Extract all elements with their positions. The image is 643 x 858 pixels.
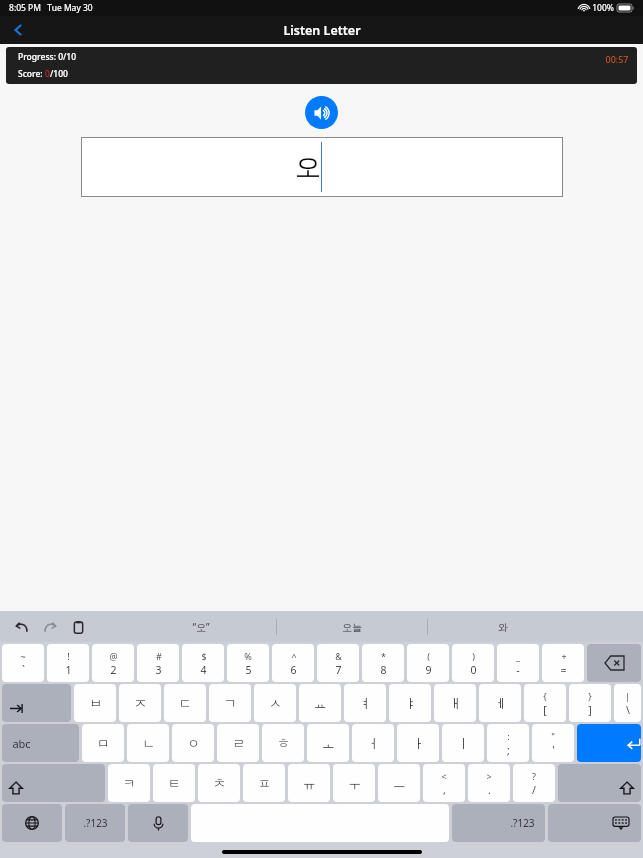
button[interactable]: ㅗ [307, 724, 349, 762]
button[interactable]: ㄹ [217, 724, 259, 762]
button[interactable]: : [487, 724, 529, 762]
button[interactable]: % [227, 644, 269, 682]
staticText: 2 [110, 663, 117, 677]
button[interactable]: ㅠ [288, 764, 330, 802]
staticText: | [625, 690, 630, 702]
button[interactable]: ~ [2, 644, 44, 682]
staticText: 와 [498, 621, 508, 634]
staticText: ㅁ [97, 735, 110, 751]
button[interactable]: Shift [2, 764, 105, 802]
staticText: : [507, 730, 510, 742]
button[interactable]: + [542, 644, 584, 682]
staticText: 5 [245, 663, 252, 677]
button[interactable]: ㅜ [333, 764, 375, 802]
button[interactable]: Back [4, 16, 32, 44]
staticText: ㅈ [134, 695, 147, 711]
button[interactable]: Backspace [587, 644, 641, 682]
staticText: ~ [20, 650, 26, 662]
button[interactable]: ㄷ [164, 684, 206, 722]
staticText: > [486, 770, 492, 782]
button[interactable]: 와 [428, 614, 578, 640]
button[interactable]: ㅂ [74, 684, 116, 722]
button[interactable]: .?123 [452, 804, 545, 842]
button[interactable]: ㅓ [352, 724, 394, 762]
staticText: ( [427, 650, 430, 662]
button[interactable]: Shift [558, 764, 641, 802]
button[interactable]: abc [2, 724, 79, 762]
button[interactable]: * [362, 644, 404, 682]
button[interactable]: ㅣ [442, 724, 484, 762]
staticText: “오” [192, 620, 210, 634]
staticText: ㄷ [179, 695, 192, 711]
button[interactable]: Play sound [305, 96, 338, 129]
button[interactable]: Change language [2, 804, 62, 842]
button[interactable]: 오 [81, 137, 563, 197]
button[interactable]: Progress: 0/10 [6, 47, 637, 84]
button[interactable]: { [524, 684, 566, 722]
staticText: .?123 [83, 816, 108, 830]
button[interactable]: Dictation [128, 804, 188, 842]
button[interactable]: 오늘 [277, 614, 427, 640]
staticText: ㅠ [303, 775, 316, 791]
staticText: 8 [380, 663, 387, 677]
staticText: ㅔ [494, 695, 507, 711]
button[interactable]: > [468, 764, 510, 802]
button[interactable]: ㅛ [299, 684, 341, 722]
button[interactable]: Tab [2, 684, 71, 722]
staticText: .?123 [510, 816, 535, 830]
staticText: ! [67, 650, 70, 662]
staticText: @ [109, 650, 118, 662]
button[interactable]: “오” [126, 614, 276, 640]
button[interactable]: $ [182, 644, 224, 682]
staticText: \ [626, 703, 630, 717]
button[interactable]: } [569, 684, 611, 722]
staticText: / [532, 783, 536, 797]
button[interactable]: ! [47, 644, 89, 682]
staticText: & [335, 650, 342, 662]
button[interactable]: ㅎ [262, 724, 304, 762]
button[interactable]: # [137, 644, 179, 682]
staticText: ㅇ [187, 735, 200, 751]
button[interactable]: ? [513, 764, 555, 802]
button[interactable]: ㄴ [127, 724, 169, 762]
button[interactable]: ㅏ [397, 724, 439, 762]
button[interactable]: _ [497, 644, 539, 682]
button[interactable]: & [317, 644, 359, 682]
button[interactable]: ㅑ [389, 684, 431, 722]
button[interactable]: Undo [10, 615, 34, 639]
button[interactable]: ㅁ [82, 724, 124, 762]
button[interactable]: ㅐ [434, 684, 476, 722]
staticText: Listen Letter [283, 22, 361, 39]
button[interactable]: ㅍ [243, 764, 285, 802]
staticText: 오늘 [342, 621, 362, 634]
button[interactable]: .?123 [65, 804, 125, 842]
button[interactable]: Paste [66, 615, 90, 639]
button[interactable]: ^ [272, 644, 314, 682]
button[interactable]: ㅋ [108, 764, 150, 802]
button[interactable]: ㄱ [209, 684, 251, 722]
button[interactable]: ㅊ [198, 764, 240, 802]
staticText: ) [472, 650, 475, 662]
button[interactable]: ㅡ [378, 764, 420, 802]
staticText: ㅡ [393, 775, 406, 791]
button[interactable]: Redo [38, 615, 62, 639]
button[interactable]: Hide keyboard [548, 804, 641, 842]
button[interactable]: ㅔ [479, 684, 521, 722]
button[interactable]: @ [92, 644, 134, 682]
button[interactable]: < [423, 764, 465, 802]
button[interactable]: ㅈ [119, 684, 161, 722]
staticText: Progress: 0/10 [18, 51, 77, 63]
button[interactable]: " [532, 724, 574, 762]
staticText: * [381, 650, 386, 662]
button[interactable]: | [614, 684, 641, 722]
staticText: 3 [155, 663, 162, 677]
button[interactable]: ㅕ [344, 684, 386, 722]
staticText: ㅏ [412, 735, 425, 751]
button[interactable]: ㅌ [153, 764, 195, 802]
button[interactable]: ( [407, 644, 449, 682]
button[interactable]: ) [452, 644, 494, 682]
button[interactable]: ㅅ [254, 684, 296, 722]
button[interactable]: ㅇ [172, 724, 214, 762]
button[interactable]: Return [577, 724, 641, 762]
